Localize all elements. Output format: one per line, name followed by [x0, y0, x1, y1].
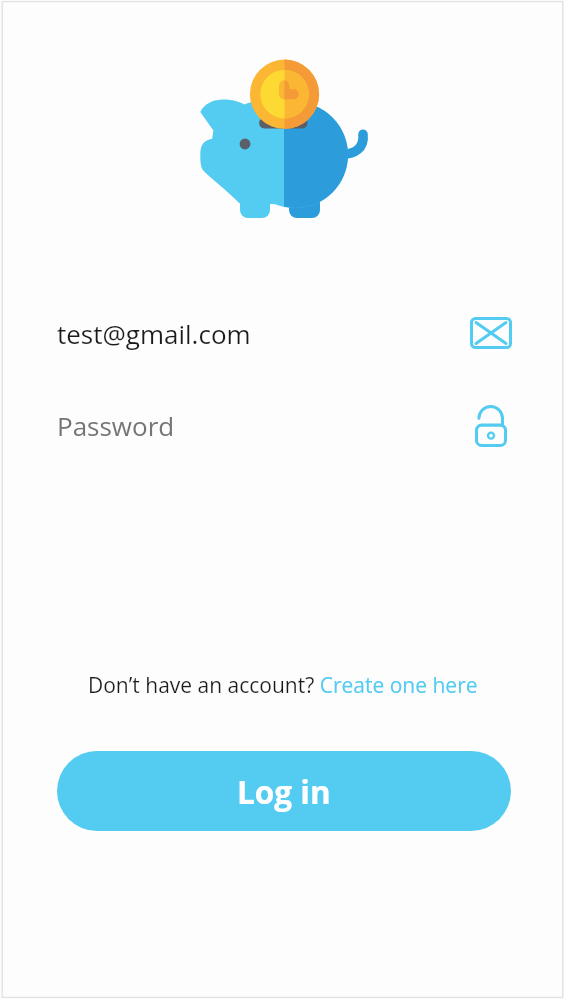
- button[interactable]: test@gmail.com: [0, 303, 565, 363]
- other: Email: [468, 310, 514, 356]
- button[interactable]: Don’t have an account? Create one here: [88, 671, 478, 700]
- staticText: Log in: [237, 770, 331, 813]
- button[interactable]: Log in: [57, 751, 511, 831]
- staticText: test@gmail.com: [57, 316, 468, 351]
- staticText: Password: [57, 408, 468, 443]
- button[interactable]: Password: [0, 395, 565, 455]
- other: Password: [468, 402, 514, 448]
